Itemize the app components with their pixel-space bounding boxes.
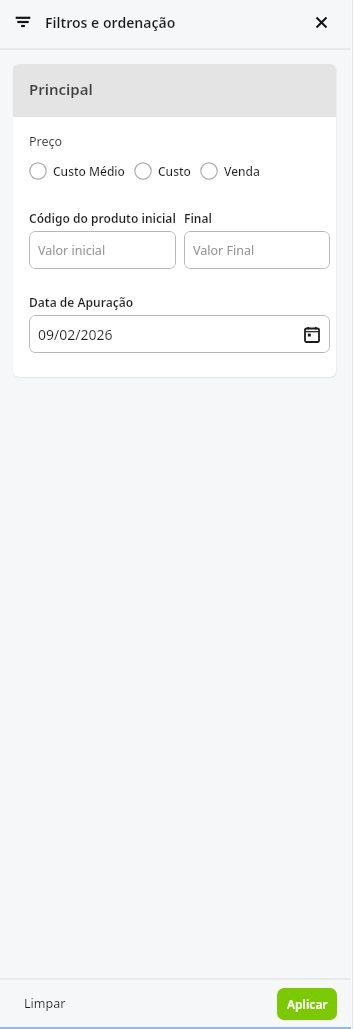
staticText: Limpar — [24, 995, 66, 1012]
staticText: Valor inicial — [38, 242, 106, 259]
staticText: 09/02/2026 — [38, 325, 113, 344]
button[interactable]: Aplicar — [277, 988, 337, 1020]
staticText: Venda — [224, 163, 260, 179]
staticText: Custo — [158, 163, 191, 179]
button[interactable]: Valor inicial — [29, 231, 176, 269]
button[interactable]: Venda — [200, 162, 260, 180]
staticText: Aplicar — [287, 996, 328, 1012]
button[interactable]: Filtros — [0, 0, 45, 44]
staticText: Data de Apuração — [29, 294, 134, 310]
staticText: Valor Final — [193, 242, 255, 259]
staticText: Preço — [29, 133, 63, 150]
other: Selecionar data — [305, 327, 319, 342]
staticText: Principal — [29, 79, 93, 99]
staticText: Código do produto inicial — [29, 210, 176, 226]
staticText: Custo Médio — [53, 163, 125, 179]
button[interactable]: Fechar — [289, 0, 354, 44]
button[interactable]: 09/02/2026 — [29, 315, 330, 353]
button[interactable]: Custo Médio — [29, 162, 125, 180]
button[interactable]: Custo — [134, 162, 191, 180]
button[interactable]: Valor Final — [184, 231, 330, 269]
staticText: Final — [184, 210, 212, 226]
button[interactable]: Limpar — [24, 989, 66, 1018]
staticText: Filtros e ordenação — [45, 13, 176, 32]
